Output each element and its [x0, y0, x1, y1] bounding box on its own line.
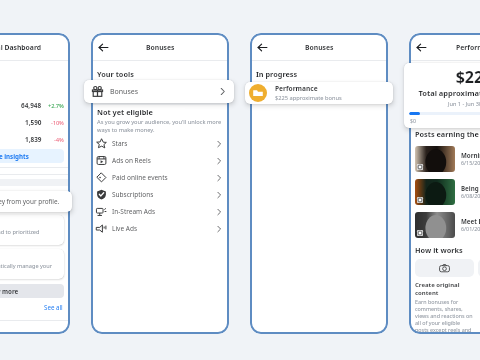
staticText: Earn bonuses for comments, shares, views…: [415, 298, 474, 334]
staticText: Live Ads: [112, 224, 215, 233]
staticText: 64,948: [21, 101, 42, 110]
staticText: Not yet eligible: [97, 107, 153, 117]
staticText: See more insights: [0, 152, 29, 160]
staticText: Subscriptions: [112, 190, 215, 199]
staticText: Easily find and respond to prioritized m…: [0, 228, 59, 241]
staticText: $225 approximate bonus: [275, 94, 342, 102]
button[interactable]: Back: [414, 40, 428, 54]
button[interactable]: Stars: [91, 135, 229, 152]
staticText: +2.7%: [48, 102, 64, 110]
button[interactable]: See all: [44, 303, 63, 311]
staticText: Bonuses: [110, 87, 218, 97]
button[interactable]: Paid online events: [91, 169, 229, 186]
staticText: Professional Dashboard: [0, 43, 42, 52]
button[interactable]: Learn how to earn money from your profil…: [0, 191, 72, 212]
button[interactable]: Subscriptions: [91, 186, 229, 203]
button[interactable]: Performance: [245, 82, 393, 104]
staticText: $0: [410, 117, 416, 124]
staticText: In-Stream Ads: [112, 207, 215, 216]
staticText: $225: [409, 66, 480, 88]
staticText: 6/01/2024: [461, 225, 480, 232]
button[interactable]: Back: [96, 40, 110, 54]
staticText: Morning routine: [461, 151, 480, 159]
staticText: Meet Luna: [461, 217, 480, 225]
staticText: Show more: [0, 287, 19, 295]
staticText: Performance: [456, 43, 480, 52]
staticText: 6/08/2024: [461, 192, 480, 199]
button[interactable]: Morning routine: [415, 142, 480, 175]
staticText: Create original content: [415, 281, 474, 296]
button[interactable]: Meet Luna: [415, 208, 480, 241]
button[interactable]: In-Stream Ads: [91, 203, 229, 220]
staticText: -4%: [54, 136, 64, 144]
staticText: Learn how to earn money from your profil…: [0, 197, 60, 206]
button[interactable]: Meta Verified test: [0, 249, 64, 279]
staticText: Bonuses: [305, 43, 334, 52]
staticText: Your tools: [97, 69, 134, 79]
staticText: Ads on Reels: [112, 156, 215, 165]
staticText: How it works: [415, 245, 463, 255]
staticText: Performance: [275, 84, 318, 93]
button[interactable]: Show more: [0, 284, 64, 298]
staticText: Stars: [112, 139, 215, 148]
staticText: 1,590: [25, 118, 42, 127]
button[interactable]: Being silly: [415, 175, 480, 208]
button[interactable]: Live Ads: [91, 220, 229, 237]
button[interactable]: Inbox manager: [0, 215, 64, 245]
staticText: Get tools that automatically manage your…: [0, 262, 59, 275]
staticText: Jun 1 - Jun 30: [409, 100, 480, 108]
staticText: Posts earning the highest bonuses: [415, 129, 480, 139]
staticText: -10%: [51, 119, 64, 127]
button[interactable]: Bonuses: [84, 80, 234, 103]
button[interactable]: Back: [255, 40, 269, 54]
button[interactable]: See more insights: [0, 149, 64, 163]
staticText: As you grow your audience, you'll unlock…: [97, 118, 224, 134]
staticText: In progress: [256, 69, 298, 79]
staticText: 6/15/2024: [461, 159, 480, 166]
staticText: Total approximate bonus: [409, 88, 480, 98]
staticText: Being silly: [461, 184, 480, 192]
button[interactable]: Ads on Reels: [91, 152, 229, 169]
staticText: Paid online events: [112, 173, 215, 182]
staticText: 1,839: [25, 135, 42, 144]
staticText: Bonuses: [146, 43, 175, 52]
